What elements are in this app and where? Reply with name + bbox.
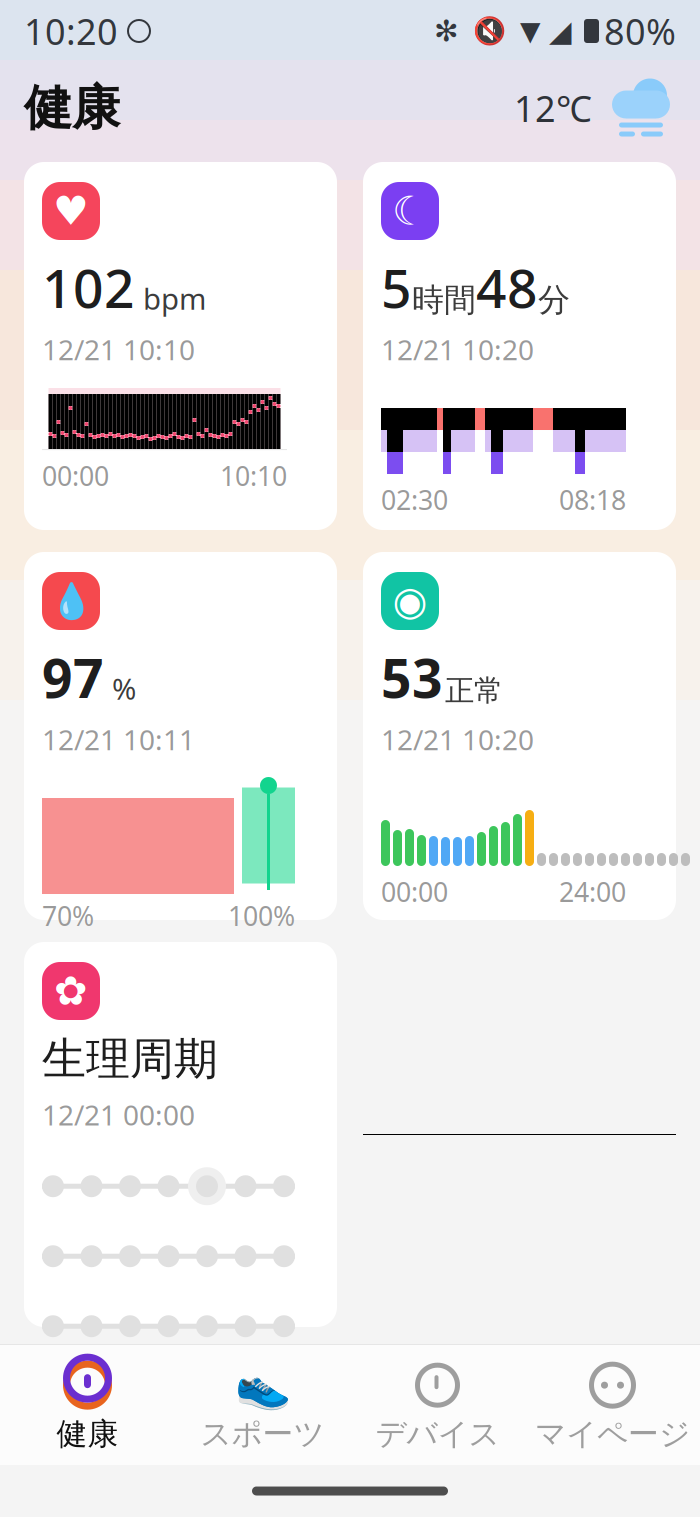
button[interactable]: デバイス [350,1359,525,1455]
button[interactable]: Sleep 5 hours 48 minutes [363,162,676,530]
staticText: 💧 [49,581,92,621]
staticText: 70% [42,898,94,933]
staticText: 分 [538,280,570,320]
staticText: 10:10 [220,458,287,493]
staticText: ✿ [54,968,88,1014]
staticText: 24:00 [559,874,626,909]
staticText: 12/21 00:00 [42,1096,195,1133]
staticText: 時間 [412,280,476,320]
staticText: 12/21 10:11 [42,721,195,758]
staticText: 08:18 [559,482,626,517]
button[interactable]: Blood oxygen 97 percent [24,552,337,920]
staticText: 12/21 10:20 [381,331,534,368]
button[interactable]: Heart rate 102 bpm [24,162,337,530]
staticText: マイページ [535,1415,690,1453]
staticText: 🔇 [473,16,506,46]
staticText: % [112,669,136,708]
staticText: 48 [476,252,538,323]
staticText: ✻ [434,14,459,48]
button[interactable]: Weather 12 degrees [514,77,676,139]
staticText: 12/21 10:10 [42,331,195,368]
staticText: 02:30 [381,482,448,517]
staticText: 53 [381,642,443,713]
staticText: 👟 [234,1359,290,1411]
staticText: 12℃ [514,84,592,132]
staticText: ☾ [392,188,428,234]
staticText: ◢ [549,14,572,48]
staticText: bpm [143,279,206,318]
staticText: 12/21 10:20 [381,721,534,758]
button[interactable]: マイページ [525,1359,700,1455]
staticText: 生理周期 [42,1032,218,1086]
staticText: 80% [604,7,676,55]
staticText: 00:00 [42,458,109,493]
button[interactable]: Menstrual cycle [24,942,337,1327]
staticText: 健康 [56,1415,118,1453]
staticText: ▼ [520,16,541,46]
staticText: 5 [381,252,412,323]
staticText: スポーツ [200,1415,324,1453]
staticText: 00:00 [381,874,448,909]
staticText: ◉ [392,578,427,624]
button[interactable]: 👟 [175,1359,350,1455]
staticText: ♥ [53,188,89,234]
staticText: 10:20 [24,7,118,55]
staticText: 97 [42,642,104,713]
staticText: 100% [228,898,295,933]
staticText: 102 [42,252,135,323]
button[interactable]: 健康 [0,1359,175,1455]
button[interactable]: Stress 53 normal [363,552,676,920]
staticText: デバイス [375,1415,499,1453]
staticText: 健康 [24,78,120,137]
staticText: 正常 [445,673,503,709]
